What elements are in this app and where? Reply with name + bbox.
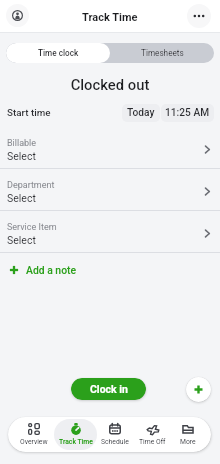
staticText: Department: [7, 180, 55, 191]
button[interactable]: Today: [122, 104, 160, 122]
button[interactable]: Track Time: [54, 419, 97, 450]
staticText: Add a note: [26, 264, 77, 276]
staticText: 11:25 AM: [165, 107, 210, 119]
staticText: Select: [7, 150, 36, 162]
staticText: Track Time: [82, 11, 138, 24]
button[interactable]: Add a note: [0, 259, 86, 281]
staticText: Today: [127, 107, 155, 119]
button[interactable]: Timesheets: [110, 43, 214, 63]
staticText: Time Off: [139, 438, 166, 446]
staticText: Select: [7, 192, 36, 204]
staticText: Clock in: [90, 383, 128, 395]
button[interactable]: Billable: [0, 127, 220, 168]
staticText: Select: [7, 234, 36, 246]
button[interactable]: Department: [0, 169, 220, 210]
staticText: Overview: [20, 438, 48, 446]
button[interactable]: More options: [187, 4, 211, 28]
staticText: Start time: [7, 107, 51, 118]
staticText: Billable: [7, 138, 37, 149]
staticText: Clocked out: [0, 76, 220, 93]
button[interactable]: Overview: [16, 419, 52, 450]
staticText: More: [180, 438, 196, 446]
staticText: Service Item: [7, 222, 57, 233]
button[interactable]: More: [174, 419, 202, 450]
button[interactable]: Add: [186, 377, 211, 402]
button[interactable]: Time clock: [6, 43, 110, 63]
button[interactable]: Profile: [6, 4, 29, 27]
button[interactable]: 11:25 AM: [161, 104, 214, 122]
button[interactable]: Service Item: [0, 211, 220, 252]
staticText: Time clock: [38, 48, 79, 58]
staticText: Timesheets: [141, 48, 184, 58]
button[interactable]: Clock in: [71, 378, 146, 400]
button[interactable]: Schedule: [97, 419, 133, 450]
staticText: Track Time: [59, 438, 93, 446]
button[interactable]: Time Off: [135, 419, 169, 450]
staticText: Schedule: [101, 438, 129, 446]
